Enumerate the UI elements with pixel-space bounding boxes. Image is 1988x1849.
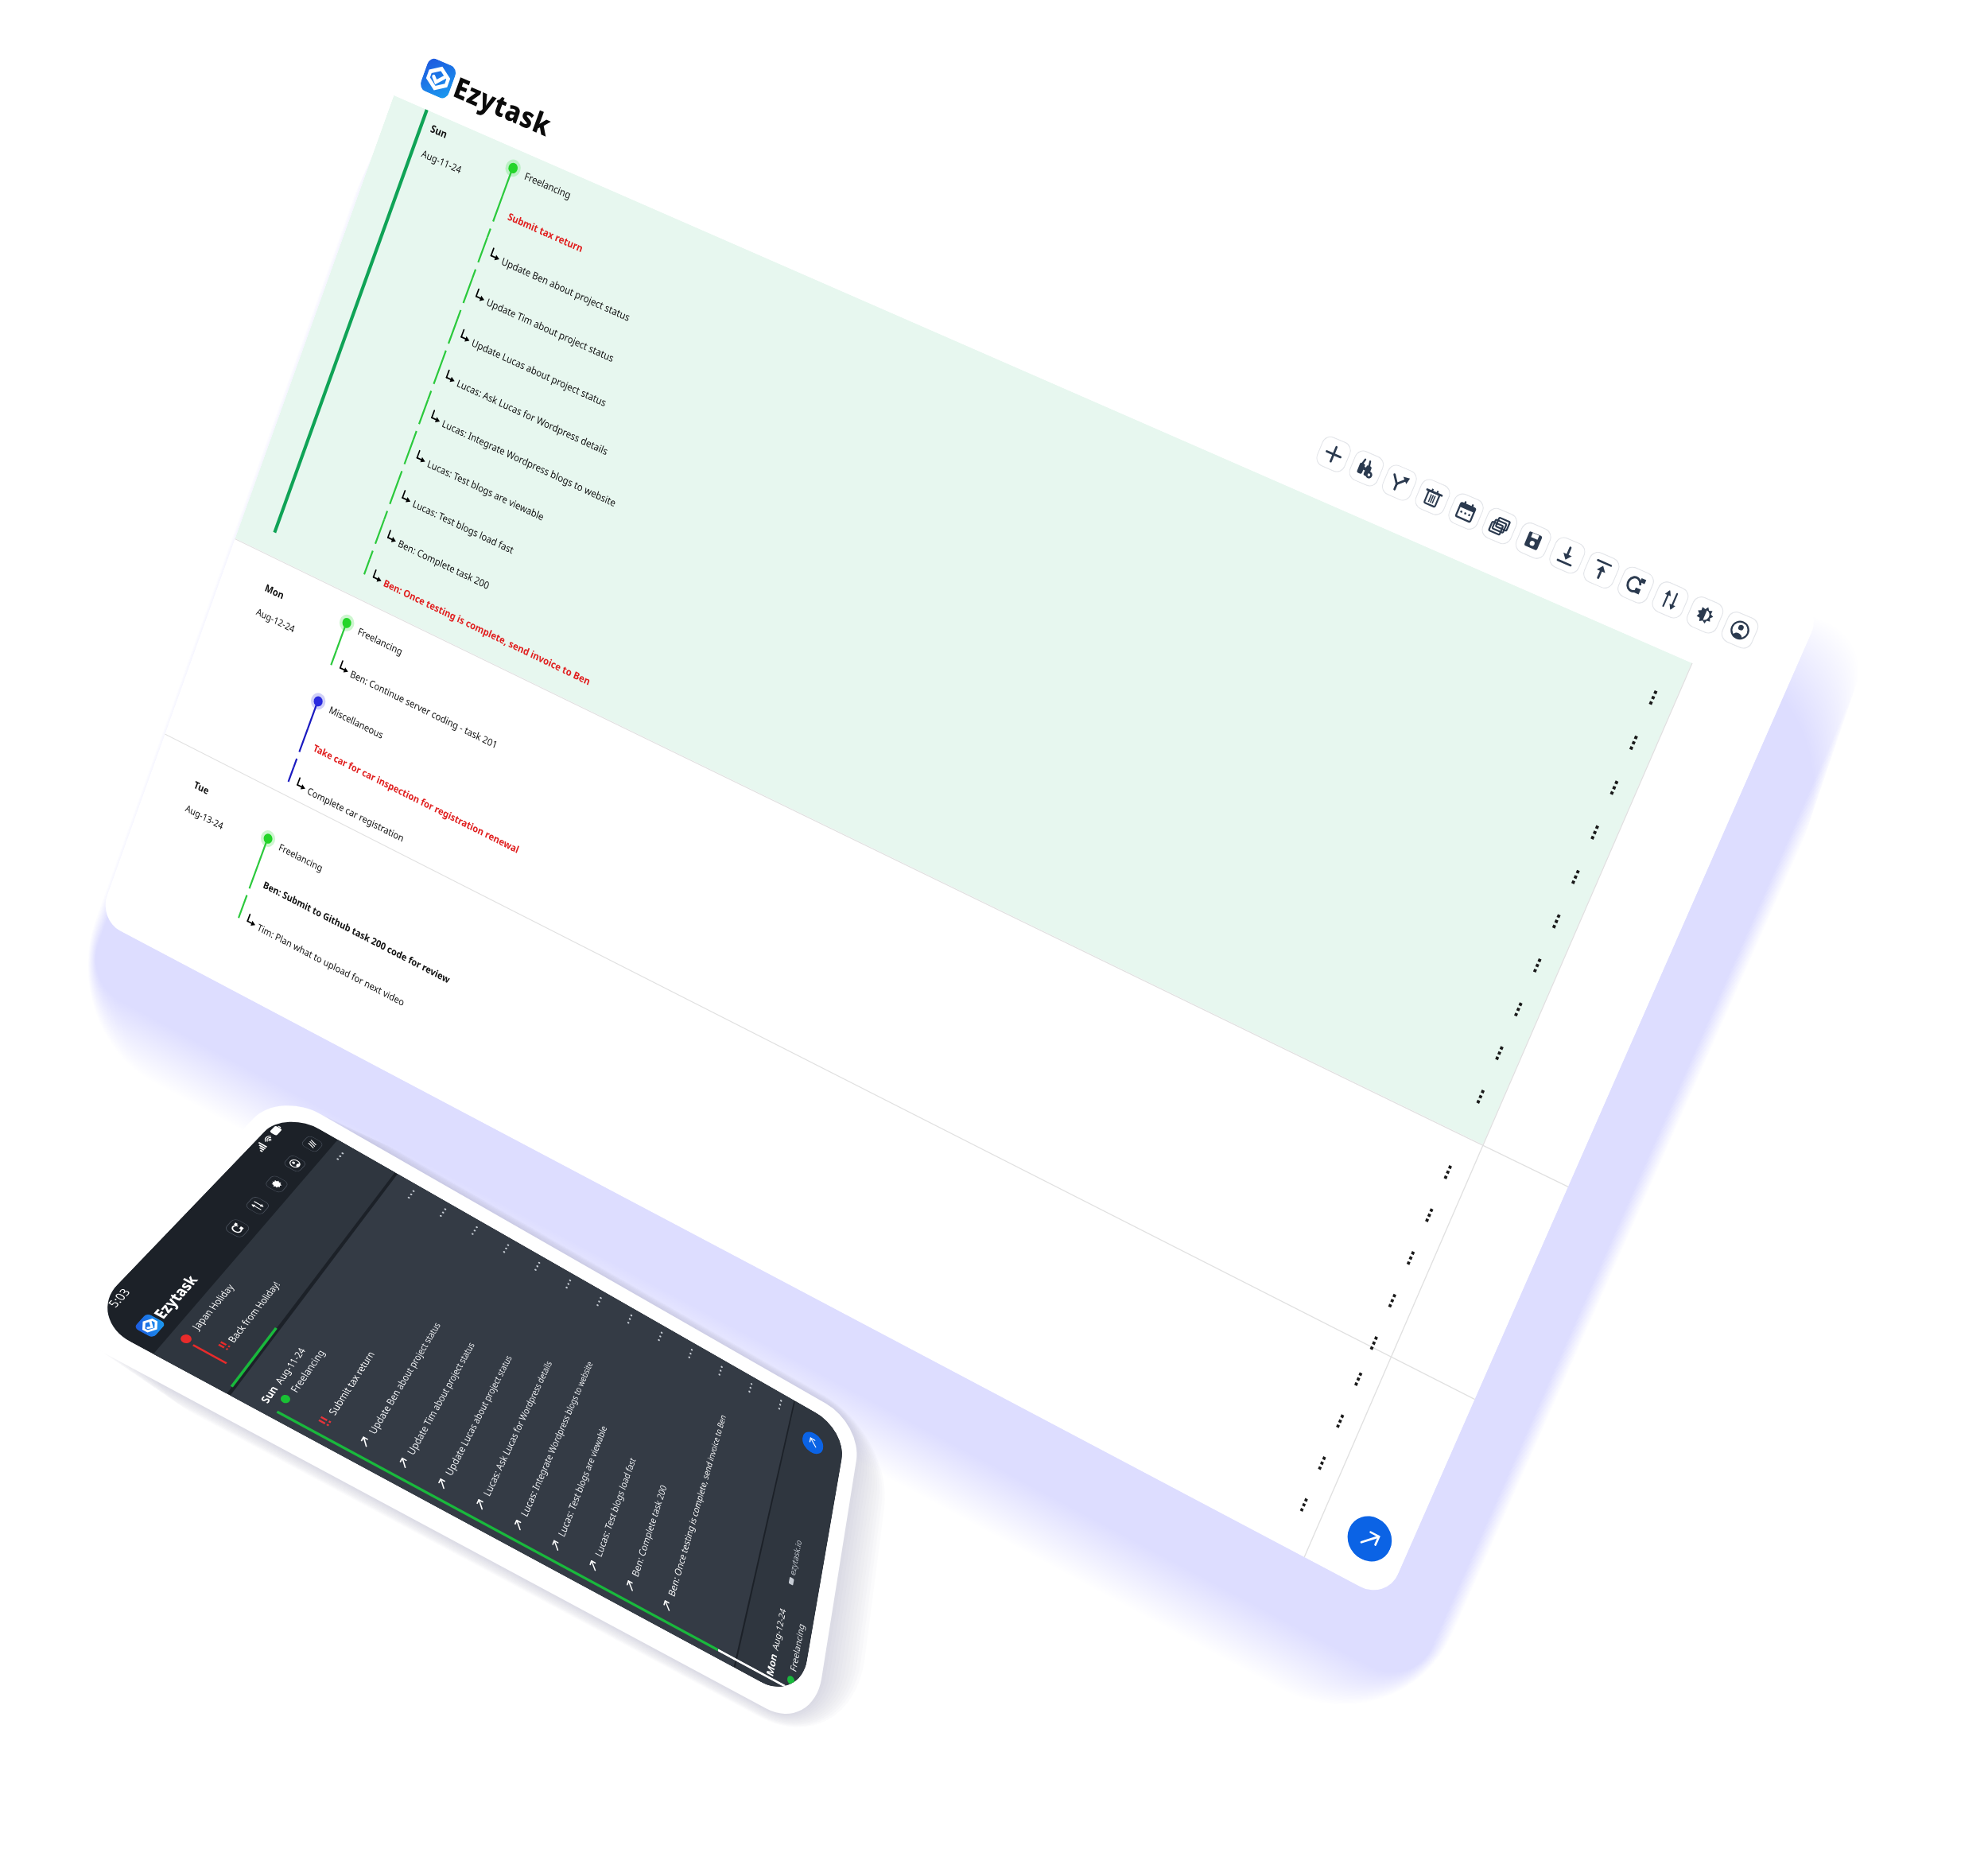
staticText: Freelancing [277,841,325,874]
button[interactable]: More options [518,1254,554,1281]
staticText: Ben: Once testing is complete, send invo… [382,576,593,688]
staticText: Aug-12-24 [255,605,297,635]
button[interactable]: Scroll to top [801,1428,825,1458]
button[interactable]: More options [1582,820,1607,845]
staticText: Ben: Continue server coding - task 201 [349,667,500,752]
staticText: Sun [257,1382,281,1405]
button[interactable]: Delete [1412,476,1453,518]
button[interactable]: Branch [1379,462,1420,504]
button[interactable]: Sort [1649,578,1692,622]
button[interactable]: Toolbar action [282,1154,308,1173]
staticText: Miscellaneous [327,703,386,742]
button[interactable]: More options [1544,909,1568,934]
button[interactable]: More options [733,1376,766,1402]
button[interactable]: More options [1506,997,1530,1022]
staticText: Lucas: Test blogs load fast [411,497,516,557]
button[interactable]: More options [1487,1041,1511,1065]
button[interactable]: More options [1563,864,1587,889]
staticText: Sun [429,121,450,141]
button[interactable]: More options [1436,1160,1459,1184]
button[interactable]: More options [612,1307,646,1334]
button[interactable]: Save [1512,519,1554,562]
staticText: Tim: Plan what to upload for next video [256,921,406,1009]
staticText: Ezytask [449,67,557,145]
staticText: Submit tax return [506,210,586,255]
button[interactable]: Upload [1580,549,1623,592]
button[interactable]: More options [1640,685,1665,710]
button[interactable]: More options [642,1324,676,1351]
staticText: Lucas: Test blogs are viewable [555,1423,610,1539]
staticText: Aug-11-24 [271,1345,308,1386]
staticText: Aug-13-24 [184,802,225,832]
button[interactable]: More options [1601,775,1626,800]
button[interactable]: Toolbar action [264,1174,290,1194]
button[interactable]: More options [455,1218,492,1245]
staticText: ezytask.io [787,1537,804,1578]
staticText: Ben: Complete task 200 [629,1482,670,1579]
staticText: Complete car registration [306,784,406,845]
staticText: Ben: Complete task 200 [396,537,492,592]
staticText: Lucas: Ask Lucas for Wordpress details [455,376,610,458]
staticText: Lucas: Ask Lucas for Wordpress details [480,1358,555,1499]
button[interactable]: More options [332,1150,347,1163]
button[interactable]: More options [703,1359,736,1385]
button[interactable]: More options [1525,953,1549,978]
button[interactable]: Menu [300,1135,324,1153]
staticText: Freelancing [356,625,405,658]
staticText: Freelancing [523,169,573,202]
button[interactable]: More options [673,1342,706,1368]
button[interactable]: More options [1621,730,1646,755]
button[interactable]: Account [1718,609,1762,652]
button[interactable]: Copy [1479,505,1520,547]
button[interactable]: Sync [1614,564,1657,606]
staticText: Lucas: Integrate Wordpress blogs to webs… [518,1359,596,1519]
staticText: Japan Holiday [188,1282,237,1332]
button[interactable]: More options [763,1393,795,1419]
staticText: Update Ben about project status [500,254,633,324]
button[interactable]: More options [1380,1288,1404,1313]
staticText: Update Lucas about project status [470,336,608,409]
button[interactable]: More options [487,1236,523,1263]
button[interactable]: Search [1346,448,1387,489]
button[interactable]: More options [1310,1451,1333,1475]
button[interactable]: More options [1346,1367,1369,1391]
staticText: Back from Holiday! [224,1279,283,1345]
button[interactable]: More options [1468,1084,1492,1109]
button[interactable]: Download [1546,534,1588,577]
staticText: Ezytask [148,1271,203,1322]
staticText: Submit tax return [325,1348,378,1418]
button[interactable]: Toolbar action [223,1217,252,1239]
staticText: Freelancing [787,1621,807,1674]
button[interactable]: More options [391,1182,429,1209]
button[interactable]: More options [1362,1331,1385,1355]
button[interactable]: More options [1292,1492,1315,1517]
button[interactable]: Calendar [1445,490,1487,533]
staticText: Aug-12-24 [769,1606,788,1652]
staticText: Lucas: Test blogs are viewable [426,457,546,524]
button[interactable]: Toolbar action [244,1195,271,1216]
button[interactable]: Theme [1684,593,1727,637]
staticText: Freelancing [287,1347,328,1395]
staticText: 5:03 [103,1285,134,1310]
staticText: Update Tim about project status [485,295,616,365]
staticText: Take car for car inspection for registra… [312,741,521,856]
staticText: Tue [192,777,211,797]
staticText: Update Ben about project status [365,1320,444,1437]
staticText: Lucas: Integrate Wordpress blogs to webs… [440,417,618,510]
button[interactable]: More options [1328,1409,1351,1433]
button[interactable]: Add [1314,433,1354,475]
button[interactable]: Scroll to top [1341,1508,1399,1569]
staticText: Mon [763,1650,779,1679]
button[interactable]: More options [423,1200,460,1227]
staticText: Ben: Submit to Github task 200 code for … [262,878,452,986]
staticText: Lucas: Test blogs load fast [592,1455,639,1560]
button[interactable]: More options [793,1409,796,1420]
staticText: Update Tim about project status [404,1339,478,1458]
staticText: Ben: Once testing is complete, send invo… [665,1412,729,1599]
staticText: Mon [263,580,287,602]
staticText: Aug-11-24 [420,147,464,177]
button[interactable]: More options [1399,1246,1422,1270]
button[interactable]: More options [1417,1203,1441,1227]
button[interactable]: More options [581,1289,616,1316]
button[interactable]: More options [550,1272,585,1298]
